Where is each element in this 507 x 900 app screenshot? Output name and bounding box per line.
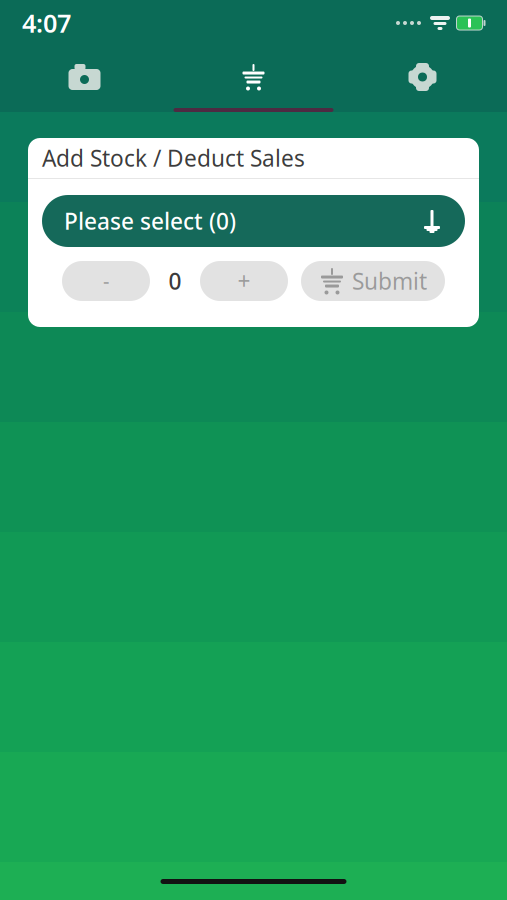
button[interactable]: Camera bbox=[0, 46, 169, 112]
staticText: 0 bbox=[168, 266, 181, 296]
button[interactable]: Settings bbox=[338, 46, 507, 112]
button[interactable]: - bbox=[62, 261, 150, 301]
button[interactable]: Stock bbox=[169, 46, 338, 112]
button[interactable]: Submit bbox=[301, 261, 445, 301]
staticText: Submit bbox=[352, 266, 427, 296]
staticText: + bbox=[237, 266, 250, 296]
staticText: Please select (0) bbox=[64, 206, 236, 236]
button[interactable]: + bbox=[200, 261, 288, 301]
staticText: Add Stock / Deduct Sales bbox=[42, 143, 305, 173]
staticText: 4:07 bbox=[22, 6, 71, 40]
staticText: - bbox=[103, 268, 109, 294]
button[interactable]: Please select (0) bbox=[42, 195, 465, 247]
